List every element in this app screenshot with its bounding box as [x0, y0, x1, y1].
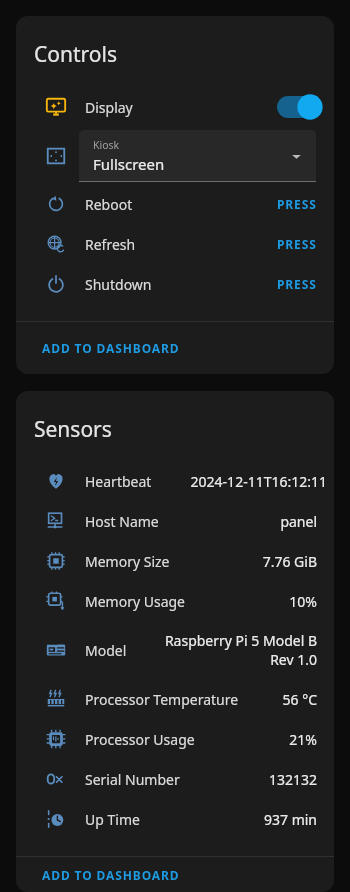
staticText: PRESS: [277, 236, 317, 252]
button[interactable]: PRESS: [270, 230, 324, 258]
staticText: Raspberry Pi 5 Model B Rev 1.0: [162, 631, 317, 669]
staticText: Refresh: [85, 235, 136, 254]
staticText: Processor Temperature: [85, 690, 239, 709]
staticText: 7.76 GiB: [197, 552, 317, 571]
button[interactable]: PRESS: [270, 270, 324, 298]
staticText: Host Name: [85, 512, 159, 531]
button[interactable]: Model: [16, 621, 334, 679]
staticText: Processor Usage: [85, 730, 195, 749]
button[interactable]: Serial Number: [16, 759, 334, 799]
staticText: 937 min: [207, 810, 317, 829]
staticText: 10%: [207, 592, 317, 611]
button[interactable]: Processor Temperature: [16, 679, 334, 719]
staticText: 132132: [207, 770, 317, 789]
staticText: Display: [85, 98, 133, 117]
staticText: 21%: [247, 730, 317, 749]
button[interactable]: Memory Size: [16, 541, 334, 581]
button[interactable]: Kiosk: [79, 130, 316, 182]
staticText: Sensors: [34, 415, 112, 444]
button[interactable]: Processor Usage: [16, 719, 334, 759]
staticText: Controls: [34, 40, 117, 69]
staticText: ADD TO DASHBOARD: [42, 867, 180, 883]
staticText: PRESS: [277, 196, 317, 212]
button[interactable]: Memory Usage: [16, 581, 334, 621]
staticText: 2024-12-11T16:12:11: [152, 472, 327, 491]
button[interactable]: Up Time: [16, 799, 334, 839]
staticText: Up Time: [85, 810, 140, 829]
staticText: panel: [197, 512, 317, 531]
button[interactable]: Heartbeat: [16, 461, 334, 501]
button[interactable]: Toggle display: [274, 90, 324, 124]
button[interactable]: Reboot: [16, 184, 334, 224]
staticText: ADD TO DASHBOARD: [42, 340, 180, 356]
staticText: Heartbeat: [85, 472, 152, 491]
button[interactable]: ADD TO DASHBOARD: [16, 322, 334, 374]
button[interactable]: Host Name: [16, 501, 334, 541]
staticText: Fullscreen: [93, 154, 165, 174]
staticText: Reboot: [85, 195, 133, 214]
staticText: Memory Usage: [85, 592, 186, 611]
staticText: Memory Size: [85, 552, 170, 571]
button[interactable]: ADD TO DASHBOARD: [16, 857, 334, 892]
staticText: Serial Number: [85, 770, 180, 789]
staticText: Model: [85, 641, 127, 660]
button[interactable]: PRESS: [270, 190, 324, 218]
staticText: Kiosk: [93, 138, 120, 152]
staticText: PRESS: [277, 276, 317, 292]
button[interactable]: Display: [16, 88, 334, 126]
staticText: Shutdown: [85, 275, 152, 294]
button[interactable]: Refresh: [16, 224, 334, 264]
button[interactable]: Shutdown: [16, 264, 334, 304]
staticText: 56 °C: [257, 690, 317, 709]
